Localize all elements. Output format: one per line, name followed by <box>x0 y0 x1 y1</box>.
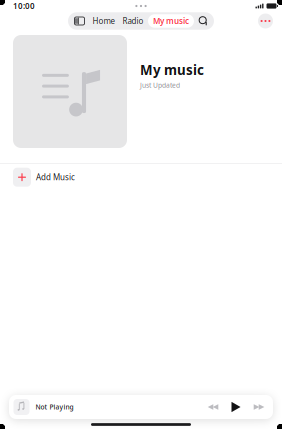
staticText: 10:00 <box>13 1 35 11</box>
staticText: My music <box>153 16 189 26</box>
button[interactable]: Search <box>195 12 212 29</box>
button[interactable]: Add Music <box>0 164 282 191</box>
staticText: Add Music <box>36 172 75 182</box>
button[interactable]: Home <box>89 12 119 29</box>
button[interactable]: More <box>258 13 273 28</box>
button[interactable]: Show sidebar <box>70 12 89 29</box>
staticText: My music <box>140 61 204 79</box>
staticText: Radio <box>122 16 143 26</box>
button[interactable]: Not Playing <box>9 395 201 419</box>
button[interactable]: Rewind <box>201 397 225 417</box>
button[interactable]: Play <box>225 397 247 417</box>
staticText: Home <box>92 16 115 26</box>
button[interactable]: Fast forward <box>247 397 271 417</box>
button[interactable]: My music <box>147 14 195 28</box>
button[interactable]: Radio <box>119 12 147 29</box>
staticText: Just Updated <box>140 81 180 90</box>
staticText: Not Playing <box>35 403 73 411</box>
